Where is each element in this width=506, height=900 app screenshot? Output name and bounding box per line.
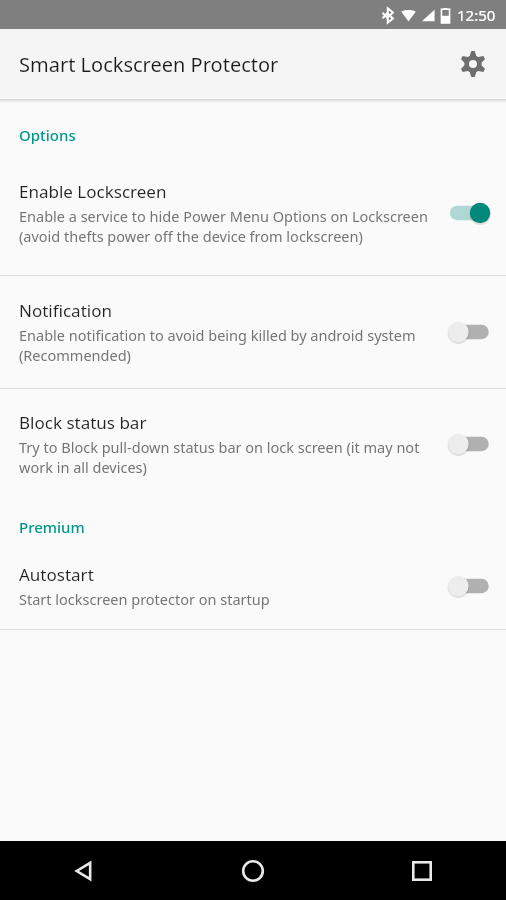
button[interactable]: Block status bar [0,389,506,499]
staticText: Start lockscreen protector on startup [19,589,270,609]
staticText: Notification [19,299,112,322]
button[interactable]: Notification [0,276,506,388]
button[interactable]: Back [0,841,168,900]
staticText: Options [19,125,76,145]
staticText: Smart Lockscreen Protector [19,51,279,78]
button[interactable]: Settings [449,40,497,88]
staticText: 12:50 [457,5,496,25]
staticText: Enable a service to hide Power Menu Opti… [19,206,430,246]
button[interactable]: Autostart off [440,566,492,606]
staticText: Enable Lockscreen [19,180,167,203]
button[interactable]: Recent apps [337,841,506,900]
staticText: Block status bar [19,411,147,434]
button[interactable]: Autostart [0,543,506,629]
button[interactable]: Enable Lockscreen on [440,193,492,233]
button[interactable]: Home [168,841,337,900]
staticText: Autostart [19,563,94,586]
staticText: Try to Block pull-down status bar on loc… [19,437,430,477]
button[interactable]: Notification off [440,312,492,352]
staticText: Enable notification to avoid being kille… [19,325,430,365]
staticText: Premium [19,517,85,537]
button[interactable]: Block status bar off [440,424,492,464]
button[interactable]: Enable Lockscreen [0,151,506,275]
